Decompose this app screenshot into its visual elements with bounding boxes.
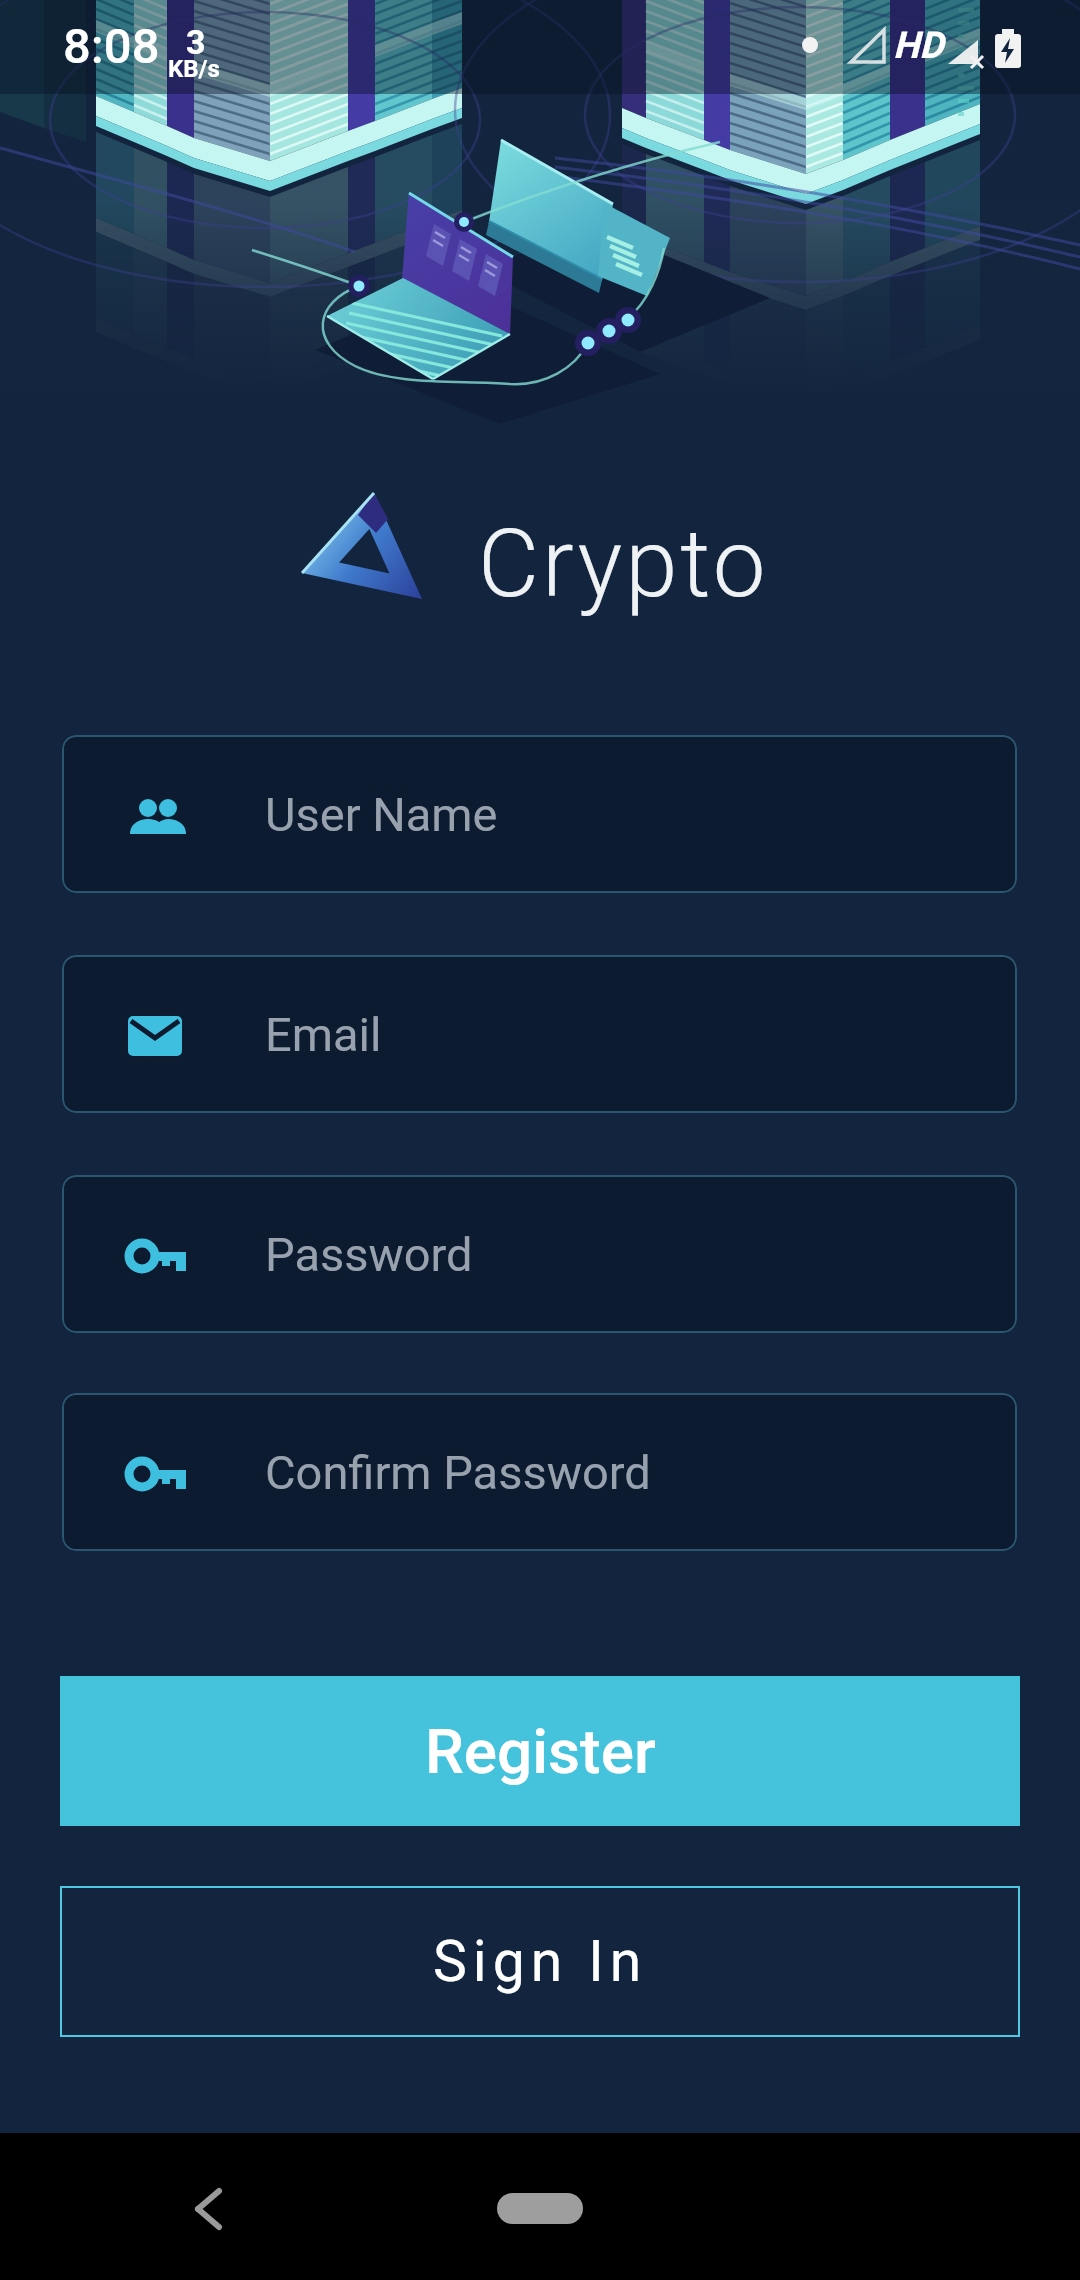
staticText: 8:08 [63, 18, 160, 75]
button[interactable] [480, 2178, 600, 2238]
staticText: 3 [186, 22, 206, 62]
staticText: HD [893, 24, 944, 67]
staticText: Register [425, 1715, 656, 1788]
staticText: KB/s [168, 55, 220, 83]
staticText: Confirm Password [265, 1445, 651, 1500]
staticText: Sign In [433, 1928, 648, 1995]
button[interactable]: Sign In [60, 1886, 1020, 2037]
button[interactable]: Register [60, 1676, 1020, 1826]
staticText: Crypto [478, 509, 769, 619]
staticText: Email [265, 1007, 382, 1062]
button[interactable]: Email [62, 955, 1017, 1113]
button[interactable]: Confirm Password [62, 1393, 1017, 1551]
button[interactable]: User Name [62, 735, 1017, 893]
staticText: User Name [265, 787, 498, 842]
button[interactable]: Password [62, 1175, 1017, 1333]
button[interactable] [180, 2173, 240, 2243]
staticText: Password [265, 1227, 473, 1282]
